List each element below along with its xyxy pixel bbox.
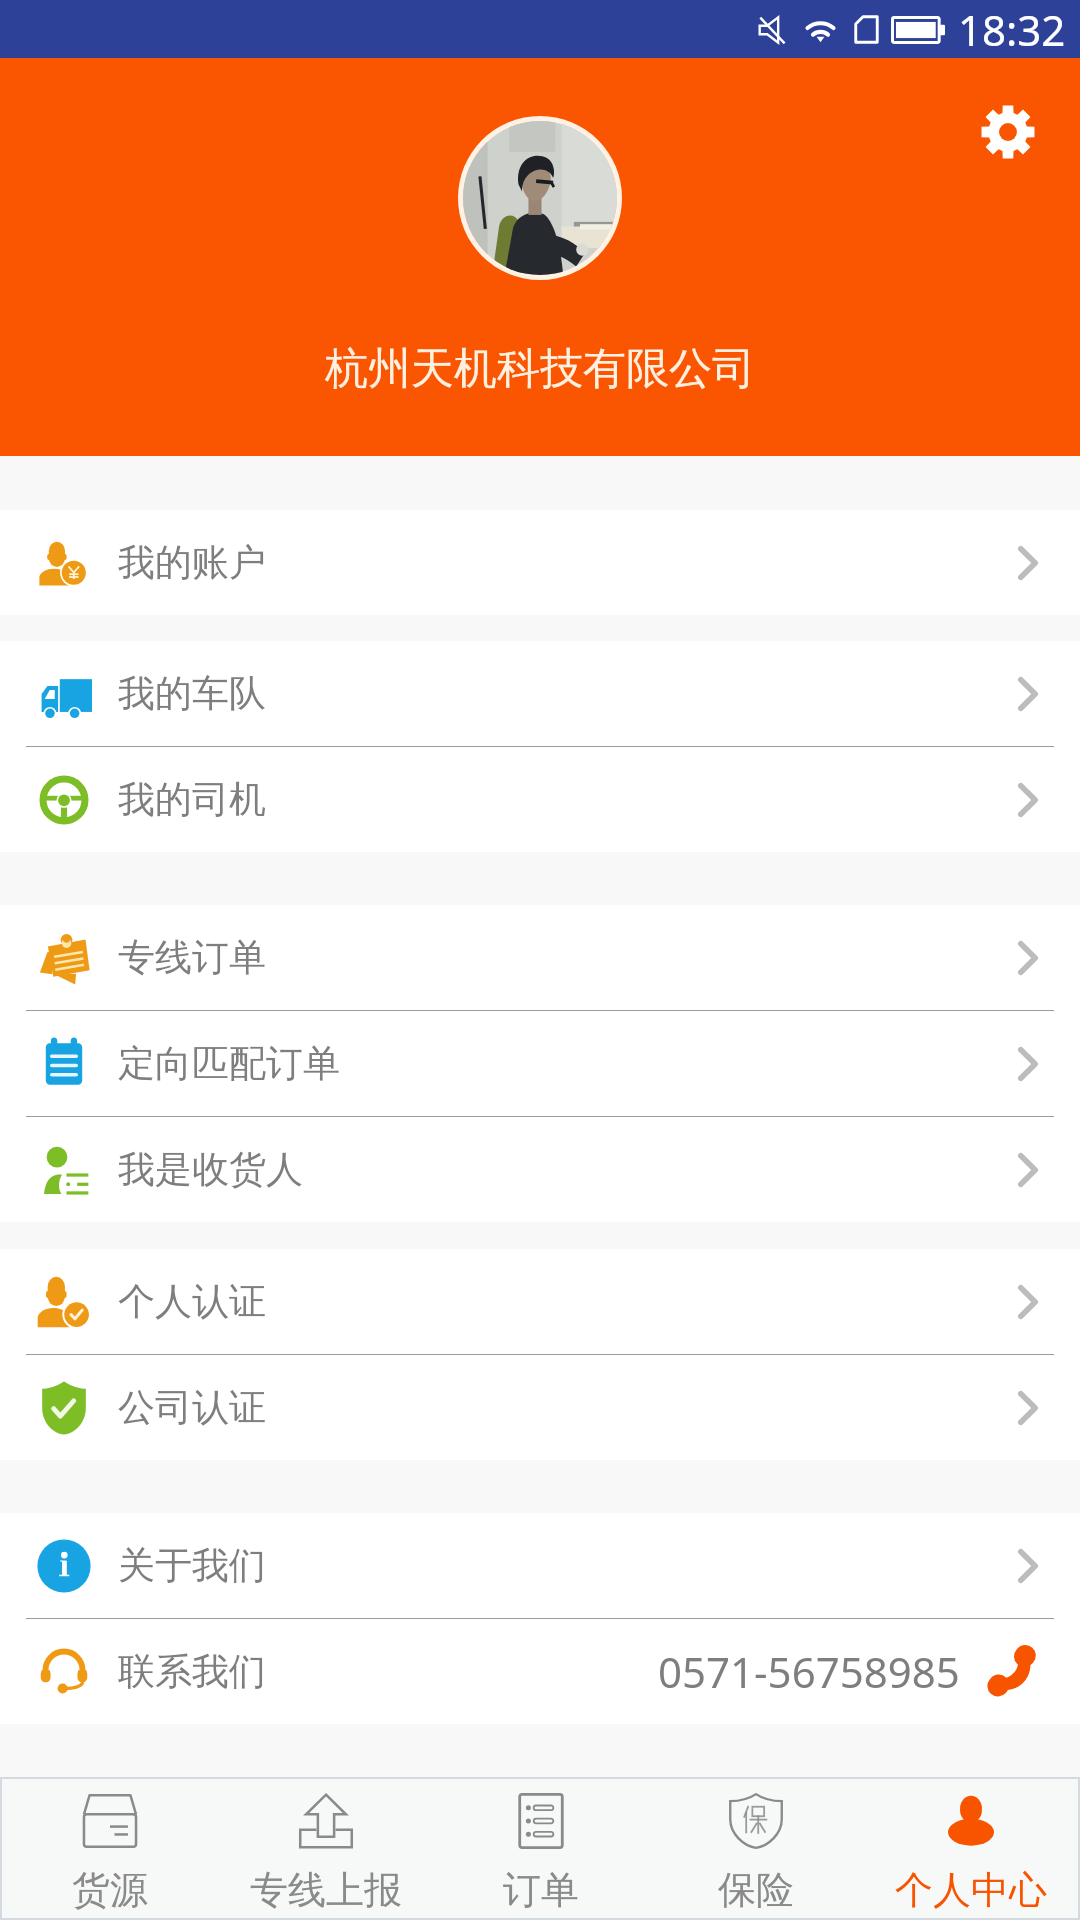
button[interactable]: Profile photo <box>458 116 622 280</box>
staticText: 联系我们 <box>118 1648 266 1695</box>
button[interactable]: 我的账户 <box>0 510 1080 615</box>
button[interactable]: 定向匹配订单 <box>0 1011 1080 1116</box>
button[interactable]: 专线上报 <box>218 1779 433 1918</box>
button[interactable]: 保险 <box>648 1779 863 1918</box>
staticText: 个人认证 <box>118 1278 266 1325</box>
staticText: 公司认证 <box>118 1384 266 1431</box>
button[interactable]: 专线订单 <box>0 905 1080 1010</box>
staticText: 18:32 <box>958 1 1066 58</box>
button[interactable]: 我是收货人 <box>0 1117 1080 1222</box>
button[interactable]: 订单 <box>433 1779 648 1918</box>
staticText: 我的账户 <box>118 539 266 586</box>
staticText: 订单 <box>503 1866 579 1914</box>
staticText: 关于我们 <box>118 1542 266 1589</box>
staticText: 我的司机 <box>118 776 266 823</box>
staticText: 个人中心 <box>895 1866 1047 1914</box>
button[interactable]: Call 0571-56758985 <box>982 1641 1044 1703</box>
button[interactable]: 关于我们 <box>0 1513 1080 1618</box>
button[interactable]: 我的车队 <box>0 641 1080 746</box>
staticText: 我的车队 <box>118 670 266 717</box>
button[interactable]: 联系我们 <box>0 1619 1080 1724</box>
button[interactable]: Settings <box>981 105 1035 159</box>
button[interactable]: 个人认证 <box>0 1249 1080 1354</box>
staticText: 专线上报 <box>250 1866 402 1914</box>
staticText: 定向匹配订单 <box>118 1040 340 1087</box>
staticText: 杭州天机科技有限公司 <box>325 342 755 396</box>
button[interactable]: 个人中心 <box>863 1779 1078 1918</box>
button[interactable]: 货源 <box>2 1779 218 1918</box>
staticText: 保险 <box>718 1866 794 1914</box>
button[interactable]: 我的司机 <box>0 747 1080 852</box>
staticText: 0571-56758985 <box>658 1643 960 1700</box>
staticText: 我是收货人 <box>118 1146 303 1193</box>
staticText: 专线订单 <box>118 934 266 981</box>
button[interactable]: 公司认证 <box>0 1355 1080 1460</box>
staticText: 货源 <box>72 1866 148 1914</box>
